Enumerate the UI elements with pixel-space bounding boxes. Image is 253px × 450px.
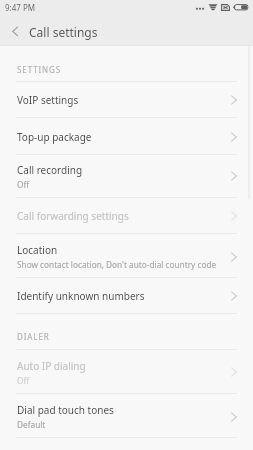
staticText: Call forwarding settings bbox=[17, 209, 129, 223]
button[interactable]: Top-up package bbox=[0, 119, 253, 155]
staticText: Call recording bbox=[17, 163, 83, 177]
staticText: Off bbox=[17, 375, 30, 386]
button[interactable]: Location bbox=[0, 235, 253, 278]
staticText: VoIP settings bbox=[17, 93, 79, 107]
button[interactable]: Call forwarding settings bbox=[0, 198, 253, 234]
button[interactable]: Auto IP dialing bbox=[0, 350, 253, 394]
staticText: 9:47 PM bbox=[5, 2, 36, 13]
staticText: DIALER bbox=[17, 331, 50, 342]
staticText: Default bbox=[17, 419, 46, 430]
button[interactable]: Call recording bbox=[0, 155, 253, 197]
button[interactable]: VoIP settings bbox=[0, 82, 253, 118]
button[interactable]: Back bbox=[0, 18, 29, 45]
staticText: Identify unknown numbers bbox=[17, 289, 145, 303]
staticText: Top-up package bbox=[17, 130, 92, 144]
button[interactable]: Identify unknown numbers bbox=[0, 278, 253, 314]
staticText: Call settings bbox=[29, 24, 98, 40]
staticText: Off bbox=[17, 179, 30, 190]
button[interactable]: Dial pad touch tones bbox=[0, 395, 253, 438]
staticText: Dial pad touch tones bbox=[17, 403, 114, 417]
staticText: Auto IP dialing bbox=[17, 359, 86, 373]
staticText: SETTINGS bbox=[17, 64, 62, 75]
staticText: Show contact location, Don't auto-dial c… bbox=[17, 259, 217, 270]
staticText: Location bbox=[17, 243, 58, 257]
